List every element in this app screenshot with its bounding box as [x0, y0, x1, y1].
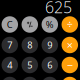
button[interactable]: 3 — [41, 77, 58, 80]
button[interactable]: 2 — [22, 77, 38, 80]
staticText: 9 — [47, 39, 52, 51]
staticText: − — [67, 58, 73, 72]
button[interactable]: 1 — [2, 77, 18, 80]
staticText: 7 — [7, 39, 12, 51]
staticText: 625 — [45, 0, 72, 18]
button[interactable]: + — [61, 77, 78, 80]
button[interactable]: C — [2, 16, 18, 33]
button[interactable]: 5 — [22, 57, 38, 73]
button[interactable]: 6 — [41, 57, 58, 73]
button[interactable]: × — [61, 37, 78, 53]
staticText: ÷ — [67, 17, 73, 32]
staticText: % — [46, 18, 54, 31]
button[interactable]: 8 — [22, 37, 38, 53]
button[interactable]: − — [61, 57, 78, 73]
button[interactable]: ÷ — [61, 16, 78, 33]
staticText: × — [67, 38, 73, 52]
button[interactable]: 9 — [41, 37, 58, 53]
button[interactable] — [22, 16, 38, 33]
button[interactable]: 4 — [2, 57, 18, 73]
button[interactable]: 7 — [2, 37, 18, 53]
staticText: C — [7, 18, 13, 31]
staticText: 6 — [47, 59, 52, 71]
button[interactable]: % — [41, 16, 58, 33]
staticText: 8 — [27, 39, 32, 51]
staticText: 4 — [7, 59, 12, 71]
staticText: 5 — [27, 59, 32, 71]
